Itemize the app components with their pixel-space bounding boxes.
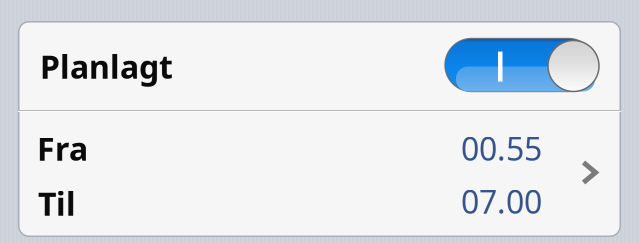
staticText: Planlagt	[40, 45, 173, 87]
staticText: Til	[38, 182, 76, 224]
staticText: 00.55	[461, 127, 542, 169]
staticText: Fra	[37, 127, 88, 169]
button[interactable]: Planlagt	[18, 21, 621, 110]
button[interactable]: Fra	[18, 21, 621, 148]
staticText: 07.00	[461, 180, 542, 222]
